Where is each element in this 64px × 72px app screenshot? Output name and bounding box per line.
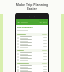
staticText: Trip Summary: [17, 26, 33, 29]
button[interactable]: Item icon: [16, 71, 48, 72]
button[interactable]: [16, 49, 48, 52]
button[interactable]: [16, 33, 48, 36]
button[interactable]: [16, 19, 48, 25]
button[interactable]: Trip Summary: [16, 25, 48, 33]
button[interactable]: Item icon: [16, 68, 48, 71]
button[interactable]: [16, 62, 48, 65]
button[interactable]: Item icon: [16, 45, 48, 48]
button[interactable]: Item icon: [16, 55, 48, 58]
button[interactable]: Item icon: [16, 58, 48, 61]
button[interactable]: Item icon: [16, 42, 48, 45]
button[interactable]: Item icon: [16, 65, 48, 68]
button[interactable]: Item icon: [16, 39, 48, 42]
button[interactable]: Item icon: [16, 52, 48, 55]
button[interactable]: Item icon: [16, 36, 48, 39]
staticText: Make Trip Planning Easier: [3, 2, 61, 11]
